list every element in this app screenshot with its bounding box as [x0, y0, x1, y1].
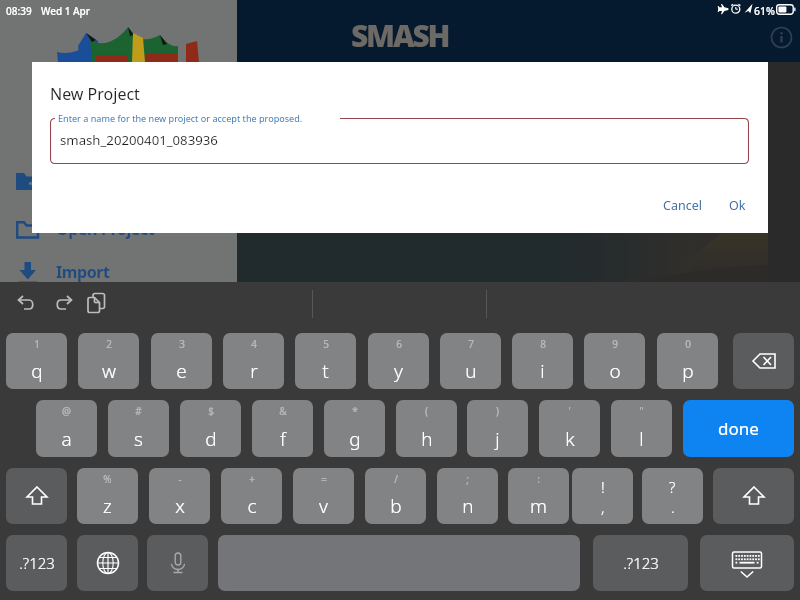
- button[interactable]: 5: [295, 333, 356, 389]
- button[interactable]: *: [324, 400, 385, 457]
- staticText: New Project: [50, 83, 140, 105]
- staticText: o: [609, 358, 621, 384]
- staticText: e: [176, 358, 187, 384]
- staticText: Ok: [729, 197, 746, 214]
- staticText: :: [537, 472, 540, 486]
- staticText: ): [496, 404, 499, 418]
- button[interactable]: 9: [584, 333, 645, 389]
- button[interactable]: ': [539, 400, 600, 457]
- staticText: 2: [106, 337, 112, 351]
- button[interactable]: 6: [368, 333, 429, 389]
- button[interactable]: @: [36, 400, 97, 457]
- staticText: ,: [601, 497, 605, 517]
- staticText: -: [178, 472, 182, 486]
- button[interactable]: (: [396, 400, 457, 457]
- button[interactable]: =: [293, 468, 354, 524]
- staticText: f: [280, 426, 286, 452]
- button[interactable]: .?123: [6, 535, 67, 591]
- button[interactable]: /: [365, 468, 426, 524]
- staticText: 61%: [754, 4, 775, 18]
- button[interactable]: Copy: [81, 287, 113, 319]
- button[interactable]: Shift: [713, 468, 794, 524]
- staticText: .?123: [19, 553, 55, 573]
- button[interactable]: 3: [151, 333, 212, 389]
- button[interactable]: done: [683, 400, 794, 457]
- button[interactable]: Backspace: [733, 333, 794, 389]
- button[interactable]: 4: [223, 333, 284, 389]
- button[interactable]: 7: [440, 333, 501, 389]
- staticText: g: [349, 426, 361, 452]
- staticText: %: [103, 472, 112, 486]
- staticText: 8: [540, 337, 546, 351]
- staticText: 0: [685, 337, 691, 351]
- staticText: 1: [34, 337, 40, 351]
- staticText: Wed 1 Apr: [41, 4, 91, 18]
- button[interactable]: 0: [657, 333, 718, 389]
- button[interactable]: ): [467, 400, 528, 457]
- button[interactable]: Ok: [715, 189, 760, 222]
- staticText: d: [205, 426, 217, 452]
- staticText: n: [462, 493, 474, 519]
- staticText: p: [682, 358, 694, 384]
- staticText: ": [639, 404, 644, 418]
- button[interactable]: 8: [512, 333, 573, 389]
- staticText: ?: [669, 477, 676, 497]
- staticText: u: [465, 358, 477, 384]
- button[interactable]: #: [108, 400, 169, 457]
- button[interactable]: 1: [6, 333, 67, 389]
- button[interactable]: Open Project: [0, 207, 237, 251]
- staticText: h: [421, 426, 433, 452]
- button[interactable]: New Project: [0, 159, 237, 203]
- button[interactable]: %: [77, 468, 138, 524]
- button[interactable]: Undo: [11, 287, 43, 319]
- staticText: a: [61, 426, 72, 452]
- staticText: k: [565, 426, 575, 452]
- staticText: +: [249, 472, 255, 486]
- button[interactable]: Cancel: [649, 189, 716, 222]
- staticText: q: [31, 358, 43, 384]
- staticText: $: [208, 404, 214, 418]
- button[interactable]: Shift: [6, 468, 67, 524]
- staticText: =: [321, 472, 327, 486]
- button[interactable]: ;: [437, 468, 498, 524]
- staticText: ;: [466, 472, 469, 486]
- staticText: smash_20200401_083936: [60, 131, 218, 149]
- staticText: w: [102, 358, 116, 384]
- staticText: t: [322, 358, 329, 384]
- button[interactable]: Voice input: [147, 535, 208, 591]
- staticText: r: [250, 358, 258, 384]
- button[interactable]: Import: [0, 250, 237, 294]
- staticText: y: [394, 358, 403, 384]
- button[interactable]: ?: [642, 468, 703, 524]
- button[interactable]: +: [221, 468, 282, 524]
- staticText: 4: [251, 337, 257, 351]
- button[interactable]: ": [611, 400, 672, 457]
- staticText: /: [394, 472, 398, 486]
- button[interactable]: 2: [78, 333, 139, 389]
- staticText: #: [135, 404, 142, 418]
- staticText: Open Project: [56, 218, 155, 240]
- staticText: b: [390, 493, 402, 519]
- staticText: c: [247, 493, 257, 519]
- staticText: x: [175, 493, 185, 519]
- button[interactable]: :: [508, 468, 569, 524]
- staticText: 9: [612, 337, 618, 351]
- staticText: .: [671, 497, 675, 517]
- button[interactable]: &: [252, 400, 313, 457]
- button[interactable]: Change language: [77, 535, 138, 591]
- staticText: 7: [468, 337, 474, 351]
- button[interactable]: $: [180, 400, 241, 457]
- button[interactable]: .?123: [593, 535, 688, 591]
- button[interactable]: Redo: [47, 287, 79, 319]
- staticText: j: [495, 426, 500, 452]
- staticText: .?123: [623, 553, 659, 573]
- staticText: SMASH: [351, 15, 449, 56]
- button[interactable]: -: [149, 468, 210, 524]
- button[interactable]: Hide keyboard: [700, 535, 794, 591]
- button[interactable]: Info: [769, 25, 793, 49]
- staticText: *: [352, 404, 358, 418]
- staticText: v: [319, 493, 328, 519]
- button[interactable]: !: [572, 468, 633, 524]
